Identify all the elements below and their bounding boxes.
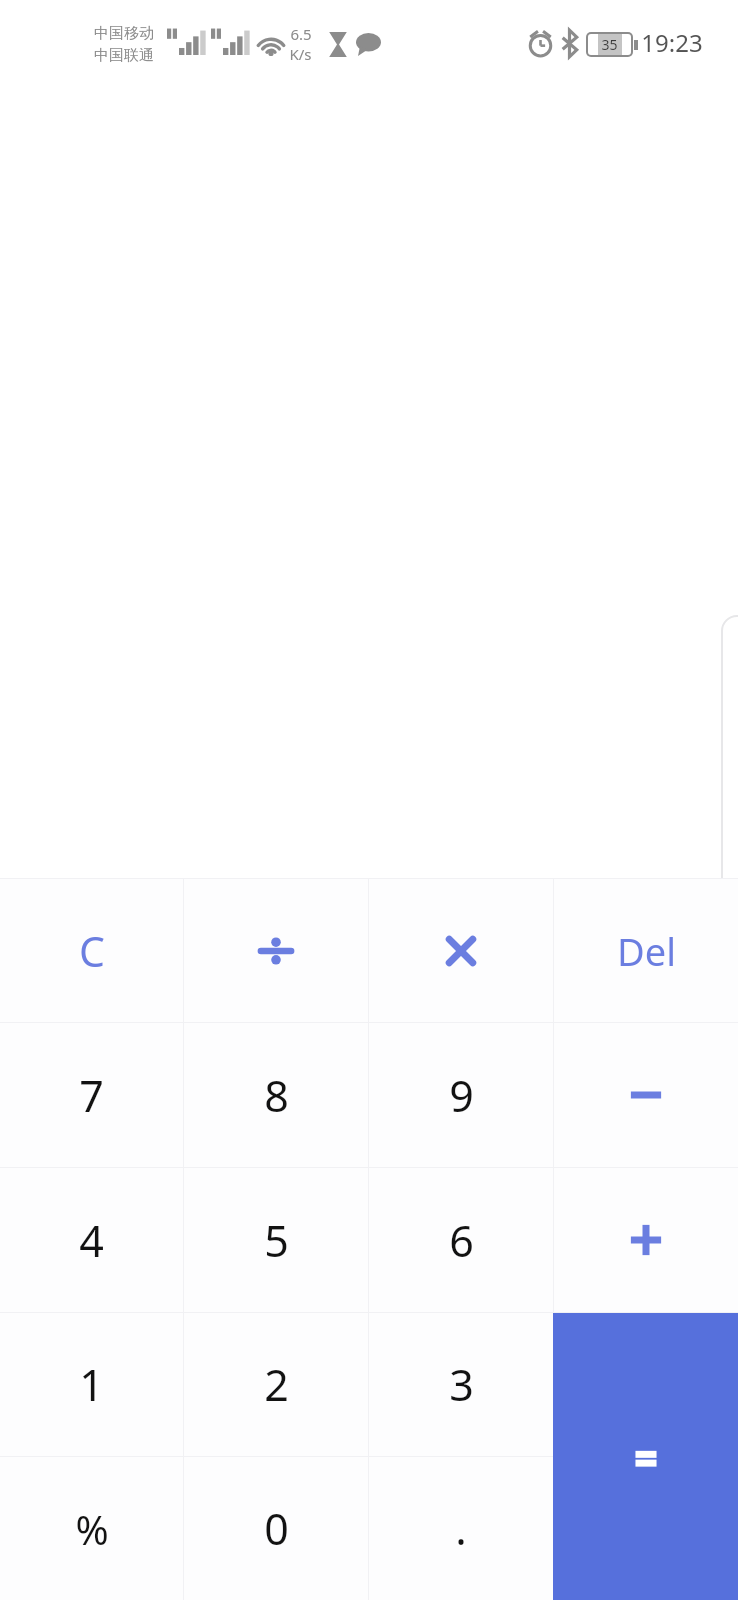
button[interactable]: 8 <box>184 1023 368 1167</box>
button[interactable]: . <box>369 1457 553 1600</box>
button[interactable]: 6 <box>369 1168 553 1312</box>
button[interactable]: 2 <box>184 1313 368 1456</box>
button[interactable]: 4 <box>0 1168 183 1312</box>
staticText: 0 <box>264 1499 289 1558</box>
staticText: 6.5 <box>290 24 312 44</box>
button[interactable]: 7 <box>0 1023 183 1167</box>
button[interactable]: 9 <box>369 1023 553 1167</box>
staticText: 3 <box>449 1355 474 1414</box>
staticText: C <box>79 923 105 979</box>
staticText: 中国移动 <box>94 24 154 43</box>
staticText: Del <box>617 925 676 977</box>
staticText: 中国联通 <box>94 46 154 65</box>
staticText: 5 <box>264 1211 289 1270</box>
button[interactable]: C <box>0 879 183 1022</box>
button[interactable]: 0 <box>184 1457 368 1600</box>
button[interactable]: 3 <box>369 1313 553 1456</box>
button[interactable]: Plus <box>554 1168 738 1312</box>
button[interactable]: Divide <box>184 879 368 1022</box>
staticText: 19:23 <box>641 26 703 59</box>
staticText: 8 <box>264 1066 289 1125</box>
staticText: 4 <box>79 1211 104 1270</box>
staticText: 2 <box>264 1355 289 1414</box>
button[interactable]: Minus <box>554 1023 738 1167</box>
staticText: 7 <box>79 1066 104 1125</box>
button[interactable]: Equals <box>553 1313 738 1600</box>
staticText: 9 <box>449 1066 474 1125</box>
staticText: 6 <box>449 1211 474 1270</box>
button[interactable]: 1 <box>0 1313 183 1456</box>
staticText: . <box>455 1499 467 1558</box>
button[interactable]: % <box>0 1457 183 1600</box>
staticText: 35 <box>601 35 618 54</box>
button[interactable]: Del <box>554 879 738 1022</box>
button[interactable]: 5 <box>184 1168 368 1312</box>
button[interactable]: Multiply <box>369 879 553 1022</box>
staticText: 1 <box>79 1355 104 1414</box>
staticText: K/s <box>289 44 312 64</box>
staticText: % <box>75 1502 109 1556</box>
